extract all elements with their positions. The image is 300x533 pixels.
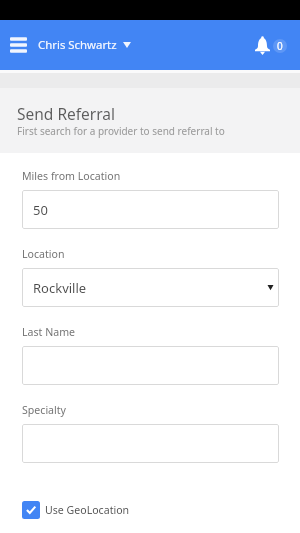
button[interactable] bbox=[22, 346, 279, 385]
button[interactable]: 50 bbox=[22, 190, 279, 229]
staticText: Location bbox=[22, 247, 65, 261]
staticText: 50 bbox=[33, 201, 48, 219]
button[interactable]: Notifications bbox=[249, 30, 300, 61]
staticText: First search for a provider to send refe… bbox=[17, 124, 225, 138]
staticText: Chris Schwartz bbox=[38, 37, 117, 53]
staticText: Miles from Location bbox=[22, 169, 121, 183]
button[interactable]: Rockville bbox=[22, 268, 279, 307]
button[interactable]: Use GeoLocation bbox=[22, 495, 130, 525]
staticText: Last Name bbox=[22, 325, 76, 339]
button[interactable]: Chris Schwartz bbox=[34, 31, 135, 59]
staticText: 0 bbox=[277, 39, 283, 53]
staticText: Send Referral bbox=[17, 103, 116, 124]
staticText: Specialty bbox=[22, 403, 67, 417]
staticText: Rockville bbox=[33, 279, 87, 297]
staticText: Use GeoLocation bbox=[45, 503, 130, 517]
button[interactable] bbox=[22, 424, 279, 463]
button[interactable]: Open navigation menu bbox=[4, 31, 32, 59]
